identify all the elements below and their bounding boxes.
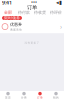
staticText: 满减活动 (10, 28, 22, 31)
staticText: 优惠券 (10, 22, 22, 27)
staticText: 9:41 (2, 0, 12, 6)
staticText: 订单 (27, 4, 37, 11)
staticText: ◂▮ (56, 0, 62, 6)
button[interactable]: 分类 (16, 91, 32, 100)
staticText: 待付款 (18, 10, 30, 15)
staticText: 没有更多了 (24, 41, 39, 44)
staticText: 待评价 (50, 10, 62, 15)
button[interactable]: 我的 (48, 91, 64, 100)
button[interactable]: 待评价 (48, 10, 64, 15)
button[interactable]: 全部 (0, 10, 16, 15)
button[interactable]: 首页 (0, 91, 16, 100)
staticText: 我的 (53, 96, 59, 99)
button[interactable]: 订单 (32, 91, 48, 100)
staticText: 全部 (4, 10, 12, 15)
button[interactable]: 待收货 (32, 10, 48, 15)
staticText: ••• (31, 0, 37, 6)
staticText: 订单 (37, 96, 43, 99)
staticText: 首页 (5, 96, 11, 99)
staticText: 限时领券 (4, 15, 20, 20)
staticText: 分类 (21, 96, 27, 99)
button[interactable]: 限时领券 (2, 16, 22, 20)
staticText: › (60, 22, 62, 31)
button[interactable]: 待付款 (16, 10, 32, 15)
button[interactable]: 优惠券 (0, 20, 64, 33)
staticText: 待收货 (34, 10, 46, 15)
